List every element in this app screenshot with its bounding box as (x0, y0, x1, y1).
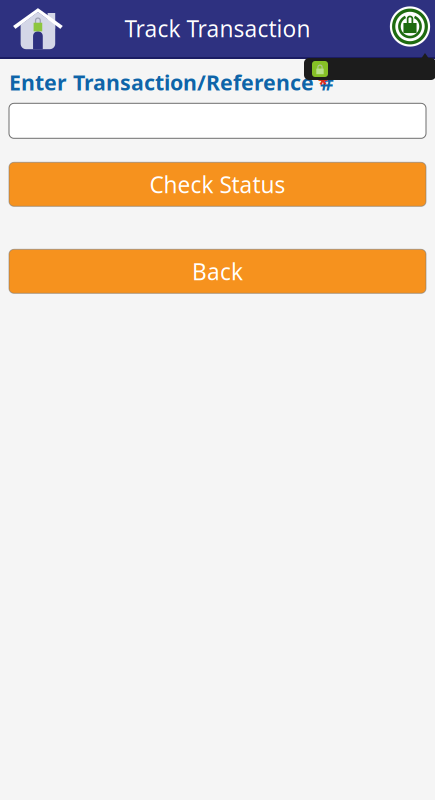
button[interactable]: Home (0, 5, 64, 52)
button[interactable]: Check Status (9, 162, 426, 206)
button[interactable]: Secure session (389, 7, 435, 49)
staticText: Enter Transaction/Reference # (9, 68, 334, 96)
button[interactable]: Back (9, 249, 426, 293)
staticText: * (318, 71, 328, 96)
staticText: Check Status (149, 169, 285, 199)
staticText: Track Transaction (124, 13, 310, 43)
staticText: Back (192, 256, 243, 286)
